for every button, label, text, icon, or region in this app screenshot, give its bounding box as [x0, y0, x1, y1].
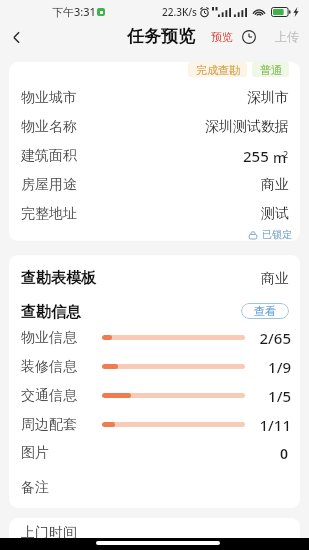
staticText: 1/11	[259, 415, 291, 435]
button[interactable]: 图片	[21, 439, 289, 467]
button[interactable]: Back	[3, 24, 29, 50]
staticText: 装修信息	[21, 358, 77, 376]
button[interactable]: 物业城市	[21, 83, 289, 112]
staticText: 完整地址	[21, 205, 77, 223]
staticText: 物业名称	[21, 118, 77, 136]
button[interactable]: 普通	[252, 62, 289, 77]
staticText: 下午3:31	[52, 4, 96, 19]
button[interactable]: History	[241, 29, 257, 45]
button[interactable]: 完整地址	[21, 199, 289, 228]
button[interactable]: 预览	[210, 27, 234, 47]
staticText: 1/5	[259, 386, 291, 406]
staticText: 商业	[261, 176, 289, 194]
staticText: 255	[243, 146, 269, 166]
staticText: 上传	[275, 29, 299, 44]
button[interactable]: 建筑面积	[21, 141, 289, 170]
staticText: 物业信息	[21, 329, 77, 347]
staticText: 房屋用途	[21, 176, 77, 194]
staticText: 1/9	[259, 357, 291, 377]
staticText: 上门时间	[21, 524, 77, 542]
button[interactable]: 装修信息	[21, 352, 291, 381]
button[interactable]: 查看	[241, 303, 289, 319]
button[interactable]: 查勘表模板	[21, 255, 289, 302]
staticText: 2	[283, 148, 289, 160]
staticText: 物业城市	[21, 89, 77, 107]
staticText: 查勘信息	[21, 303, 81, 322]
staticText: 0	[280, 444, 289, 463]
button[interactable]: 周边配套	[21, 410, 291, 439]
staticText: 查勘表模板	[21, 269, 96, 288]
staticText: 测试	[261, 205, 289, 223]
staticText: 2/65	[259, 328, 291, 348]
staticText: 建筑面积	[21, 147, 77, 165]
staticText: 已锁定	[262, 228, 292, 241]
staticText: 任务预览	[127, 26, 195, 47]
staticText: 图片	[21, 444, 49, 462]
staticText: 22.3K/s	[162, 5, 197, 19]
button[interactable]: 交通信息	[21, 381, 291, 410]
staticText: 交通信息	[21, 387, 77, 405]
staticText: m	[273, 148, 287, 164]
staticText: 商业	[261, 270, 289, 288]
button[interactable]: 备注	[21, 467, 289, 508]
staticText: 完成查勘	[196, 63, 240, 77]
staticText: 深圳市	[247, 89, 289, 107]
staticText: 预览	[211, 30, 233, 44]
staticText: 深圳测试数据	[205, 118, 289, 136]
staticText: 普通	[260, 63, 282, 77]
staticText: 查看	[254, 304, 276, 318]
button[interactable]: 物业信息	[21, 323, 291, 352]
button[interactable]: 上门时间	[21, 518, 289, 547]
staticText: 备注	[21, 479, 49, 497]
staticText: 周边配套	[21, 416, 77, 434]
button[interactable]: 房屋用途	[21, 170, 289, 199]
button[interactable]: 上传	[274, 26, 300, 47]
button[interactable]: 物业名称	[21, 112, 289, 141]
button[interactable]: 完成查勘	[188, 62, 247, 77]
